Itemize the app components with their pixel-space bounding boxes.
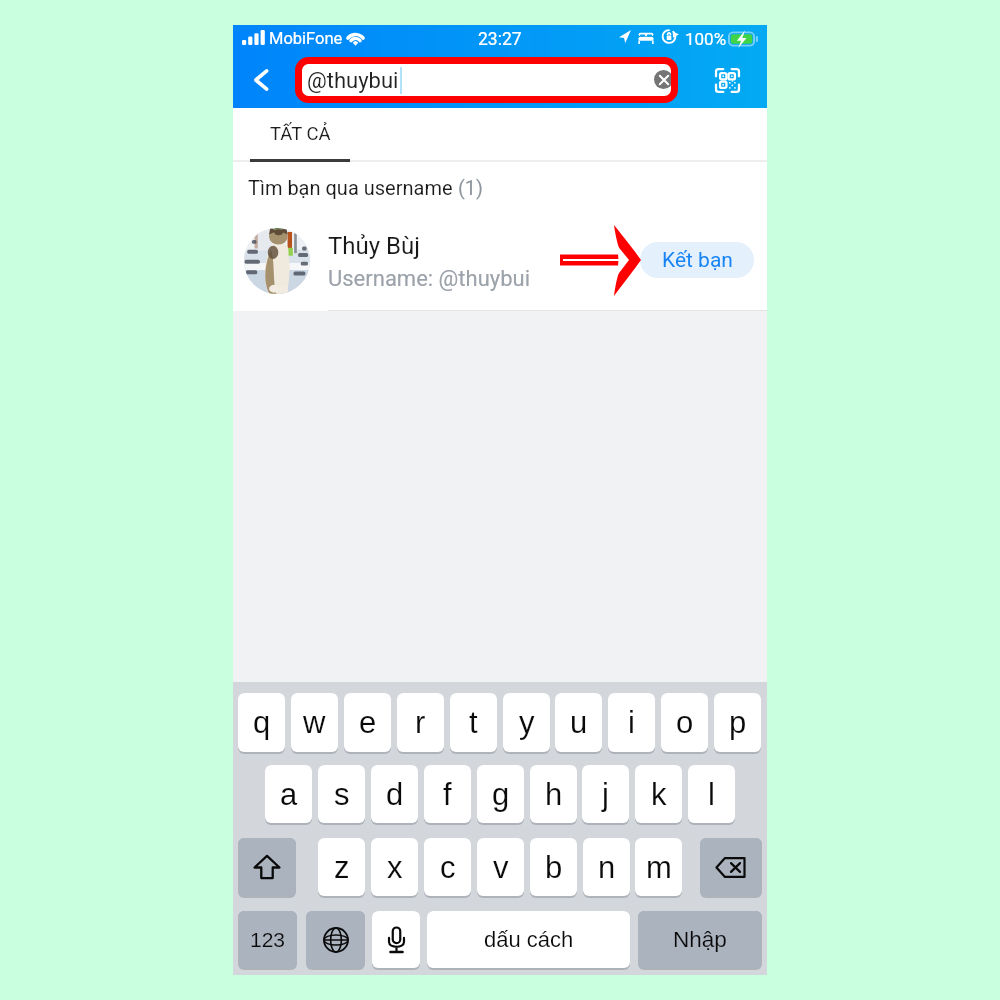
button[interactable]: i <box>608 693 655 752</box>
other: Voice input <box>388 927 405 953</box>
button[interactable]: d <box>371 765 418 823</box>
button[interactable]: Voice input <box>372 911 420 968</box>
button[interactable]: l <box>688 765 735 823</box>
other: Backspace <box>716 857 746 878</box>
staticText: (1) <box>458 176 484 199</box>
staticText: g <box>492 777 510 812</box>
staticText: n <box>598 850 616 885</box>
button[interactable]: p <box>714 693 761 752</box>
button[interactable]: s <box>318 765 365 823</box>
button[interactable]: Change keyboard <box>306 911 365 968</box>
button[interactable]: m <box>635 838 682 896</box>
staticText: o <box>676 705 694 740</box>
staticText: m <box>646 850 672 885</box>
staticText: 123 <box>250 928 286 951</box>
button[interactable]: c <box>424 838 471 896</box>
button[interactable]: g <box>477 765 524 823</box>
staticText: Tìm bạn qua username <box>248 176 458 199</box>
button[interactable]: Back <box>244 58 278 102</box>
other: Change keyboard <box>323 927 349 953</box>
staticText: w <box>303 705 326 740</box>
button[interactable]: j <box>582 765 629 823</box>
staticText: s <box>334 777 350 812</box>
staticText: TẤT CẢ <box>270 123 331 145</box>
staticText: a <box>280 777 298 812</box>
button[interactable]: k <box>635 765 682 823</box>
staticText: 100% <box>685 29 727 49</box>
button[interactable]: b <box>530 838 577 896</box>
other: Shift <box>254 855 280 879</box>
button[interactable]: Nhập <box>638 911 762 968</box>
button[interactable]: h <box>530 765 577 823</box>
staticText: y <box>519 705 535 740</box>
button[interactable]: t <box>450 693 497 752</box>
staticText: v <box>493 850 509 885</box>
button[interactable]: o <box>661 693 708 752</box>
button[interactable]: r <box>397 693 444 752</box>
staticText: z <box>334 850 350 885</box>
button[interactable]: w <box>291 693 338 752</box>
staticText: t <box>469 705 478 740</box>
staticText: k <box>651 777 667 812</box>
button[interactable]: v <box>477 838 524 896</box>
button[interactable]: Kết bạn <box>640 242 754 278</box>
button[interactable]: n <box>583 838 630 896</box>
button[interactable]: z <box>318 838 365 896</box>
staticText: c <box>440 850 456 885</box>
staticText: e <box>359 705 377 740</box>
staticText: x <box>387 850 403 885</box>
staticText: Nhập <box>673 927 727 952</box>
staticText: d <box>386 777 404 812</box>
staticText: Username: @thuybui <box>328 266 531 292</box>
button[interactable]: Backspace <box>700 838 762 896</box>
staticText: q <box>253 705 271 740</box>
button[interactable]: Shift <box>238 838 296 896</box>
staticText: u <box>570 705 588 740</box>
staticText: b <box>545 850 563 885</box>
staticText: Kết bạn <box>662 248 733 273</box>
button[interactable]: 123 <box>238 911 297 968</box>
button[interactable]: Scan QR code <box>699 52 755 108</box>
staticText: 23:27 <box>478 29 522 50</box>
button[interactable]: dấu cách <box>427 911 630 968</box>
staticText: j <box>602 777 609 812</box>
button[interactable]: q <box>238 693 285 752</box>
staticText: l <box>708 777 715 812</box>
button[interactable]: TẤT CẢ <box>250 108 350 159</box>
button[interactable]: u <box>555 693 602 752</box>
staticText: Thủy Bùj <box>328 232 421 260</box>
button[interactable]: f <box>424 765 471 823</box>
button[interactable]: a <box>265 765 312 823</box>
staticText: r <box>415 705 426 740</box>
button[interactable]: @thuybui <box>300 60 673 101</box>
staticText: dấu cách <box>484 927 574 952</box>
staticText: p <box>729 705 747 740</box>
staticText: MobiFone <box>269 29 343 48</box>
button[interactable]: y <box>503 693 550 752</box>
button[interactable]: Clear text <box>654 70 673 89</box>
staticText: @thuybui <box>307 68 399 94</box>
button[interactable]: x <box>371 838 418 896</box>
staticText: h <box>545 777 563 812</box>
button[interactable]: e <box>344 693 391 752</box>
staticText: i <box>628 705 635 740</box>
staticText: f <box>443 777 452 812</box>
